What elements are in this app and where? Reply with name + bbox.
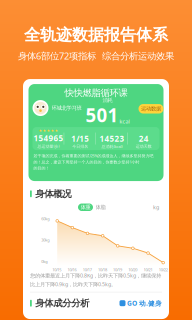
staticText: 总消耗(kcal) (101, 144, 122, 149)
staticText: 10/17 (83, 267, 92, 272)
staticText: 10/22 (159, 267, 168, 272)
staticText: 今日排名 (72, 144, 88, 149)
staticText: 10/15 (52, 267, 61, 272)
staticText: 1/15 (71, 133, 89, 144)
staticText: 消耗 (102, 97, 112, 104)
staticText: kcal (119, 118, 129, 125)
staticText: 的目的！ (33, 166, 49, 171)
staticText: 您的体重最近上月下降0.8Kg，比昨天下降0.5kg，继续保持 (30, 272, 161, 279)
staticText: 体重 (80, 204, 90, 211)
staticText: GO 动.健身 (127, 299, 162, 308)
button[interactable]: 体重 (78, 203, 93, 211)
staticText: 身体6部位72项指标 综合分析运动效果 (18, 50, 174, 62)
staticText: 30kg (41, 237, 49, 243)
staticText: 总运动量(步) (37, 143, 59, 149)
staticText: ★★★★★ (38, 128, 58, 133)
staticText: 10/21 (143, 267, 152, 272)
staticText: 运动数据 (141, 105, 161, 112)
staticText: 0kg (41, 259, 47, 264)
staticText: 154965 (33, 133, 63, 143)
staticText: 10/18 (98, 267, 107, 272)
button[interactable]: 体脂 (93, 203, 108, 211)
staticText: kg (153, 204, 159, 211)
staticText: 快快燃脂循环课 (64, 87, 127, 98)
staticText: 若干项的完成，你着重要的测试/25%的成绩达人，继续多坚持努力吧 (33, 153, 153, 158)
staticText: 24 (139, 133, 149, 144)
staticText: 身体成分分析 (35, 297, 89, 309)
staticText: 10/16 (67, 267, 76, 272)
staticText: 501 (85, 103, 118, 127)
staticText: 身体概况 (35, 188, 71, 199)
staticText: 比上月下降0.9kg，比昨天下降0.5kg。 (30, 281, 116, 288)
staticText: 10/20 (128, 267, 137, 272)
staticText: 全轨迹数据报告体系 (24, 25, 168, 45)
staticText: 14523 (99, 133, 124, 144)
staticText: 60kg (41, 216, 49, 221)
button[interactable]: 快快燃脂循环课 (28, 84, 163, 181)
staticText: 运动天数 (136, 144, 152, 149)
staticText: 体脂 (95, 204, 105, 211)
staticText: 10/19 (113, 267, 122, 272)
staticText: 环城北学习班 (51, 105, 81, 111)
staticText: 的！总之，建议下周坚持一个人的目的，你要数少坚持1小时 (33, 159, 139, 165)
